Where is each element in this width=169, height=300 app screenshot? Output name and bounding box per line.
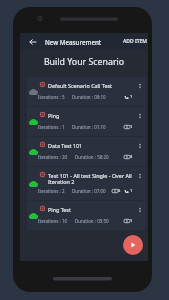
staticText: Build Your Scenario — [20, 56, 148, 68]
staticText: Duration : 09:10 — [72, 94, 106, 100]
staticText: Ping — [48, 112, 136, 119]
button[interactable]: Ping Test — [27, 201, 146, 230]
button[interactable]: Back — [24, 33, 41, 50]
staticText: Test 101 - All test Single - Over All It… — [48, 172, 136, 185]
staticText: 1 — [130, 124, 133, 129]
button[interactable]: Ping — [27, 107, 146, 136]
button[interactable]: Default Scenario Call Test — [27, 77, 146, 106]
button[interactable]: More options — [136, 172, 144, 180]
staticText: 3 — [130, 154, 133, 159]
staticText: Iterations : 1 — [38, 124, 65, 130]
staticText: 1 — [130, 218, 133, 223]
staticText: Ping Test — [48, 206, 136, 213]
staticText: ADD ITEM — [123, 38, 147, 45]
staticText: Iterations : 5 — [38, 94, 65, 100]
staticText: Data Test 101 — [48, 142, 136, 149]
staticText: Iterations : 10 — [38, 218, 68, 224]
staticText: Duration : 01:10 — [72, 124, 106, 130]
staticText: Default Scenario Call Test — [48, 82, 136, 89]
button[interactable]: Test 101 - All test Single - Over All It… — [27, 167, 146, 200]
button[interactable]: More options — [136, 206, 144, 214]
button[interactable]: More options — [136, 82, 144, 90]
staticText: Iterations : 2 — [38, 188, 65, 194]
staticText: New Measurement — [45, 38, 102, 46]
staticText: Duration : 58:20 — [75, 154, 109, 160]
button[interactable]: Data Test 101 — [27, 137, 146, 166]
button[interactable]: Start measurement — [123, 235, 143, 255]
button[interactable]: More options — [136, 142, 144, 150]
staticText: Duration : 07:00 — [72, 188, 106, 194]
button[interactable]: More options — [136, 112, 144, 120]
staticText: Iterations : 20 — [38, 154, 68, 160]
staticText: Duration : 05:50 — [75, 218, 109, 224]
staticText: 6 — [118, 188, 121, 193]
staticText: 1 — [130, 94, 133, 99]
button[interactable]: ADD ITEM — [119, 34, 148, 49]
staticText: 1 — [130, 188, 133, 193]
